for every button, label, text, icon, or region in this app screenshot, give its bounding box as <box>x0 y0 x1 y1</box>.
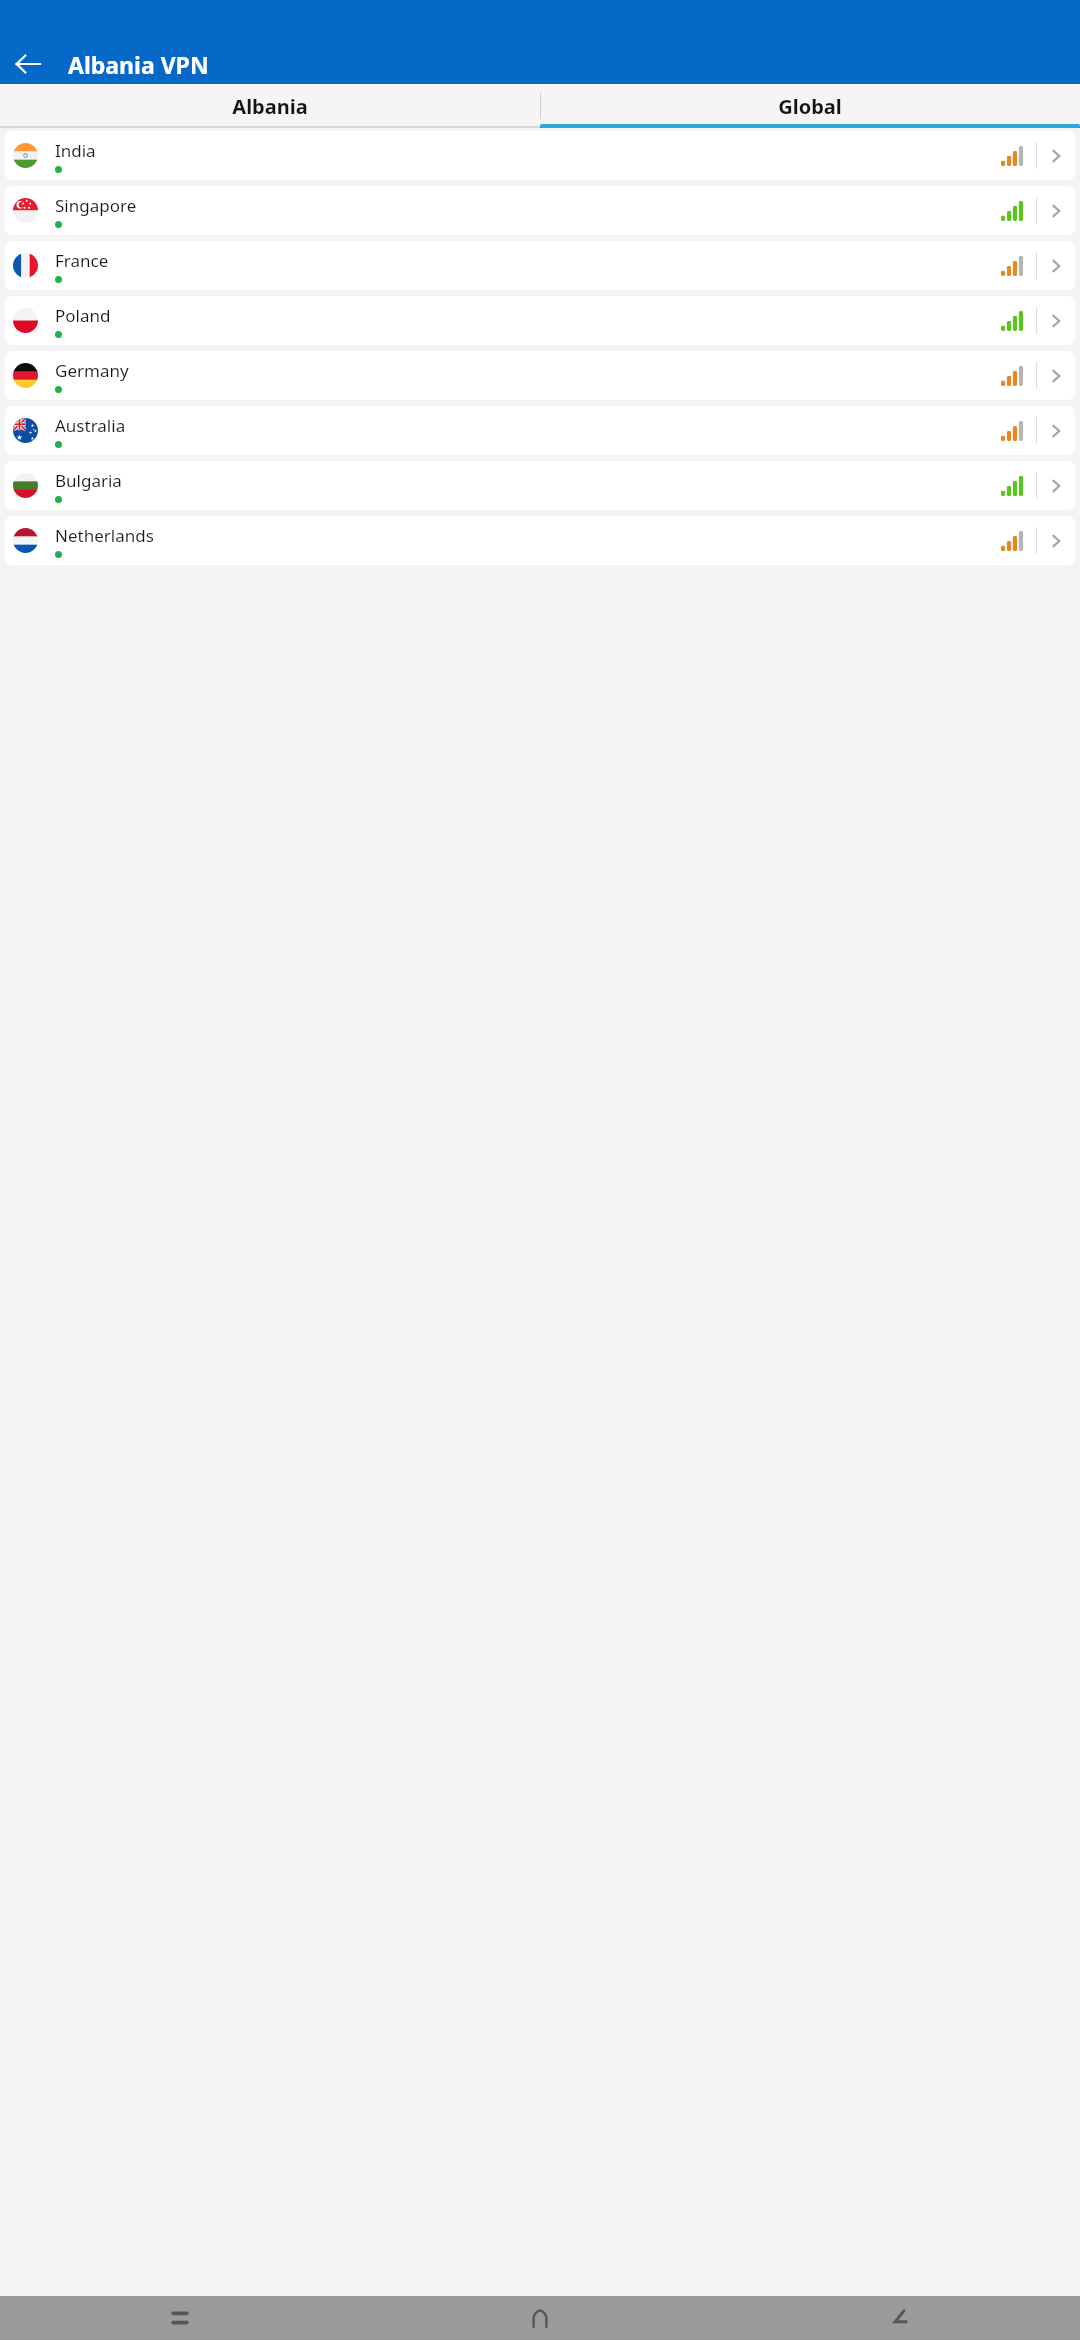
button[interactable]: Germany <box>5 351 1075 400</box>
staticText: Netherlands <box>55 524 154 547</box>
button[interactable]: Back <box>4 44 52 84</box>
staticText: Germany <box>55 359 129 382</box>
staticText: Global <box>778 93 842 120</box>
button[interactable]: Home <box>360 2296 720 2340</box>
button[interactable]: India <box>5 131 1075 180</box>
button[interactable]: Recent apps <box>0 2296 360 2340</box>
button[interactable]: Singapore <box>5 186 1075 235</box>
button[interactable]: Back <box>720 2296 1080 2340</box>
staticText: India <box>55 139 96 162</box>
staticText: Singapore <box>55 194 137 217</box>
button[interactable]: Global <box>540 84 1080 128</box>
staticText: France <box>55 249 109 272</box>
staticText: Poland <box>55 304 111 327</box>
staticText: Australia <box>55 414 126 437</box>
button[interactable]: Bulgaria <box>5 461 1075 510</box>
staticText: Albania VPN <box>68 49 209 80</box>
button[interactable]: Poland <box>5 296 1075 345</box>
staticText: Albania <box>232 93 308 120</box>
button[interactable]: Netherlands <box>5 516 1075 565</box>
button[interactable]: France <box>5 241 1075 290</box>
button[interactable]: Albania <box>0 84 540 128</box>
staticText: Bulgaria <box>55 469 122 492</box>
button[interactable]: Australia <box>5 406 1075 455</box>
